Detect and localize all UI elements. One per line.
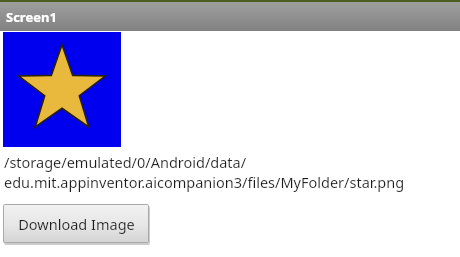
button[interactable]: Download Image: [3, 204, 149, 243]
staticText: edu.mit.appinventor.aicompanion3/files/M…: [4, 172, 405, 192]
staticText: Download Image: [18, 214, 135, 234]
staticText: Screen1: [6, 8, 57, 26]
staticText: /storage/emulated/0/Android/data/: [4, 152, 247, 172]
